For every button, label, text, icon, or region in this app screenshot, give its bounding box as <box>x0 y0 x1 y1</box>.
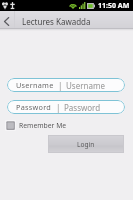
staticText: Password <box>64 102 101 113</box>
staticText: Password <box>16 102 52 112</box>
staticText: | <box>56 102 61 113</box>
button[interactable]: Password <box>7 100 125 114</box>
button[interactable]: Login <box>48 135 124 153</box>
staticText: Username <box>16 80 54 90</box>
staticText: Username <box>66 80 105 91</box>
button[interactable]: Username <box>7 78 125 92</box>
staticText: | <box>58 80 63 91</box>
button[interactable]: Back <box>0 11 14 29</box>
staticText: Login <box>77 140 95 149</box>
staticText: Lectures Kawadda <box>22 16 91 27</box>
staticText: 11:50 AM <box>98 1 130 11</box>
staticText: Remember Me <box>19 121 67 130</box>
button[interactable]: Remember Me <box>5 119 133 131</box>
